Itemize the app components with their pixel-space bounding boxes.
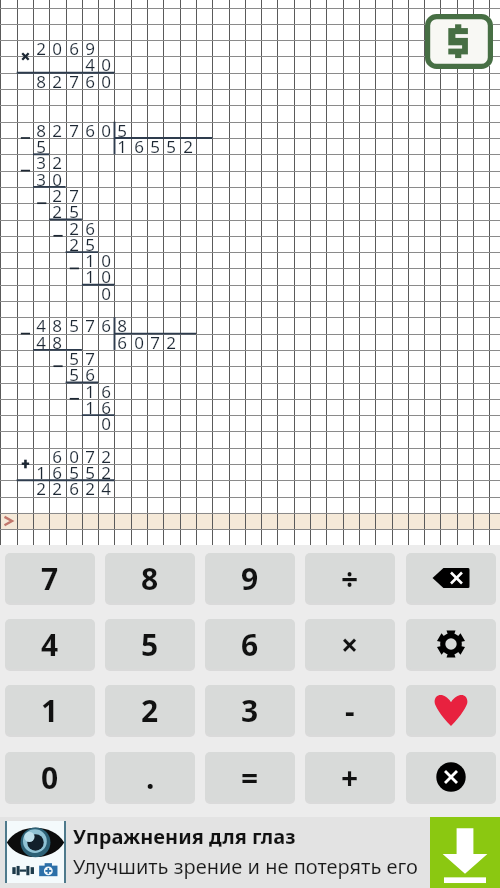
staticText: 2 — [52, 184, 62, 207]
staticText: × — [341, 624, 359, 665]
staticText: 2 — [52, 119, 62, 142]
staticText: 8 — [52, 331, 62, 354]
staticText: 0 — [41, 757, 59, 798]
staticText: 5 — [150, 135, 160, 158]
staticText: 7 — [85, 347, 95, 370]
staticText: 7 — [69, 184, 79, 207]
staticText: 6 — [101, 380, 111, 403]
button[interactable]: 9 — [205, 553, 295, 603]
staticText: 6 — [52, 445, 62, 468]
staticText: 0 — [134, 331, 144, 354]
staticText: 3 — [241, 690, 259, 731]
button[interactable]: 0 — [5, 752, 95, 802]
button[interactable]: . — [105, 752, 195, 802]
staticText: 0 — [101, 282, 111, 305]
staticText: 7 — [69, 70, 79, 93]
staticText: 2 — [69, 217, 79, 240]
staticText: 0 — [101, 249, 111, 272]
staticText: - — [345, 690, 355, 731]
staticText: 5 — [85, 233, 95, 256]
staticText: 1 — [36, 461, 46, 484]
button[interactable]: 2 — [105, 685, 195, 735]
staticText: 0 — [101, 119, 111, 142]
staticText: 2 — [52, 477, 62, 500]
staticText: 0 — [101, 53, 111, 76]
staticText: 1 — [85, 396, 95, 419]
button[interactable]: 5 — [105, 619, 195, 669]
staticText: 1 — [85, 265, 95, 288]
staticText: 6 — [69, 477, 79, 500]
button[interactable]: 3 — [205, 685, 295, 735]
button[interactable]: Remove ads — [425, 14, 493, 69]
staticText: 8 — [117, 314, 127, 337]
staticText: 5 — [69, 363, 79, 386]
staticText: 5 — [69, 200, 79, 223]
button[interactable]: Favourite — [406, 685, 496, 735]
staticText: 9 — [85, 37, 95, 60]
staticText: . — [146, 757, 155, 798]
button[interactable]: 4 — [5, 619, 95, 669]
staticText: 6 — [85, 119, 95, 142]
button[interactable]: × — [305, 619, 395, 669]
staticText: 2 — [52, 200, 62, 223]
staticText: 0 — [101, 265, 111, 288]
staticText: 2 — [101, 445, 111, 468]
staticText: 0 — [101, 412, 111, 435]
button[interactable]: Install — [430, 817, 500, 888]
staticText: 1 — [85, 380, 95, 403]
staticText: 2 — [69, 233, 79, 256]
staticText: 2 — [52, 151, 62, 174]
staticText: 6 — [85, 70, 95, 93]
staticText: 9 — [241, 558, 259, 599]
button[interactable]: 6 — [205, 619, 295, 669]
staticText: Улучшить зрение и не потерять его — [73, 853, 418, 880]
staticText: 2 — [36, 37, 46, 60]
staticText: 6 — [101, 396, 111, 419]
staticText: 6 — [241, 624, 259, 665]
staticText: 2 — [166, 331, 176, 354]
staticText: + — [341, 757, 359, 798]
staticText: 0 — [52, 37, 62, 60]
staticText: 4 — [41, 624, 59, 665]
staticText: 5 — [69, 314, 79, 337]
staticText: = — [241, 757, 259, 798]
button[interactable]: 8 — [105, 553, 195, 603]
button[interactable]: = — [205, 752, 295, 802]
staticText: 3 — [36, 168, 46, 191]
button[interactable]: Backspace — [406, 553, 496, 603]
button[interactable]: ÷ — [305, 553, 395, 603]
button[interactable]: Settings — [406, 619, 496, 669]
staticText: 5 — [85, 461, 95, 484]
staticText: 2 — [183, 135, 193, 158]
staticText: 5 — [117, 119, 127, 142]
staticText: 4 — [85, 53, 95, 76]
staticText: 6 — [52, 461, 62, 484]
staticText: 6 — [134, 135, 144, 158]
staticText: 7 — [85, 445, 95, 468]
button[interactable]: 1 — [5, 685, 95, 735]
button[interactable]: Упражнения для глаз — [0, 817, 500, 888]
staticText: 2 — [36, 477, 46, 500]
staticText: 2 — [101, 461, 111, 484]
staticText: 4 — [101, 477, 111, 500]
staticText: 1 — [117, 135, 127, 158]
staticText: 0 — [101, 70, 111, 93]
button[interactable]: 7 — [5, 553, 95, 603]
staticText: 5 — [166, 135, 176, 158]
staticText: 7 — [85, 314, 95, 337]
staticText: 7 — [69, 119, 79, 142]
staticText: 6 — [85, 363, 95, 386]
staticText: 5 — [69, 347, 79, 370]
staticText: 4 — [36, 314, 46, 337]
staticText: 6 — [101, 314, 111, 337]
staticText: 2 — [52, 70, 62, 93]
staticText: 0 — [69, 445, 79, 468]
staticText: 5 — [69, 461, 79, 484]
button[interactable]: + — [305, 752, 395, 802]
staticText: 1 — [41, 690, 59, 731]
staticText: 6 — [117, 331, 127, 354]
staticText: 8 — [52, 314, 62, 337]
button[interactable]: - — [305, 685, 395, 735]
button[interactable]: Clear — [406, 752, 496, 802]
staticText: 0 — [52, 168, 62, 191]
